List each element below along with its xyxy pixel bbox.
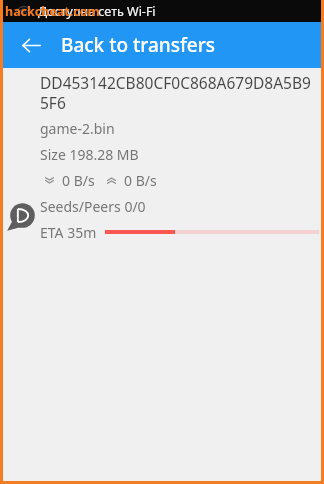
staticText: Back to transfers: [61, 32, 215, 58]
staticText: Size 198.28 MB: [40, 145, 139, 164]
button[interactable]: DD453142CB80CF0C868A679D8A5B95F6: [3, 68, 321, 240]
button[interactable]: Back: [11, 25, 51, 65]
staticText: 0 B/s: [124, 171, 157, 190]
staticText: Seeds/Peers 0/0: [40, 197, 146, 216]
staticText: Доступна сеть Wi-Fi: [38, 3, 156, 20]
staticText: game-2.bin: [40, 119, 115, 138]
staticText: DD453142CB80CF0C868A679D8A5B95F6: [40, 72, 312, 114]
staticText: ETA 35m: [40, 223, 97, 240]
staticText: 0 B/s: [62, 171, 95, 190]
staticText: hackcheat.com: [5, 3, 100, 20]
